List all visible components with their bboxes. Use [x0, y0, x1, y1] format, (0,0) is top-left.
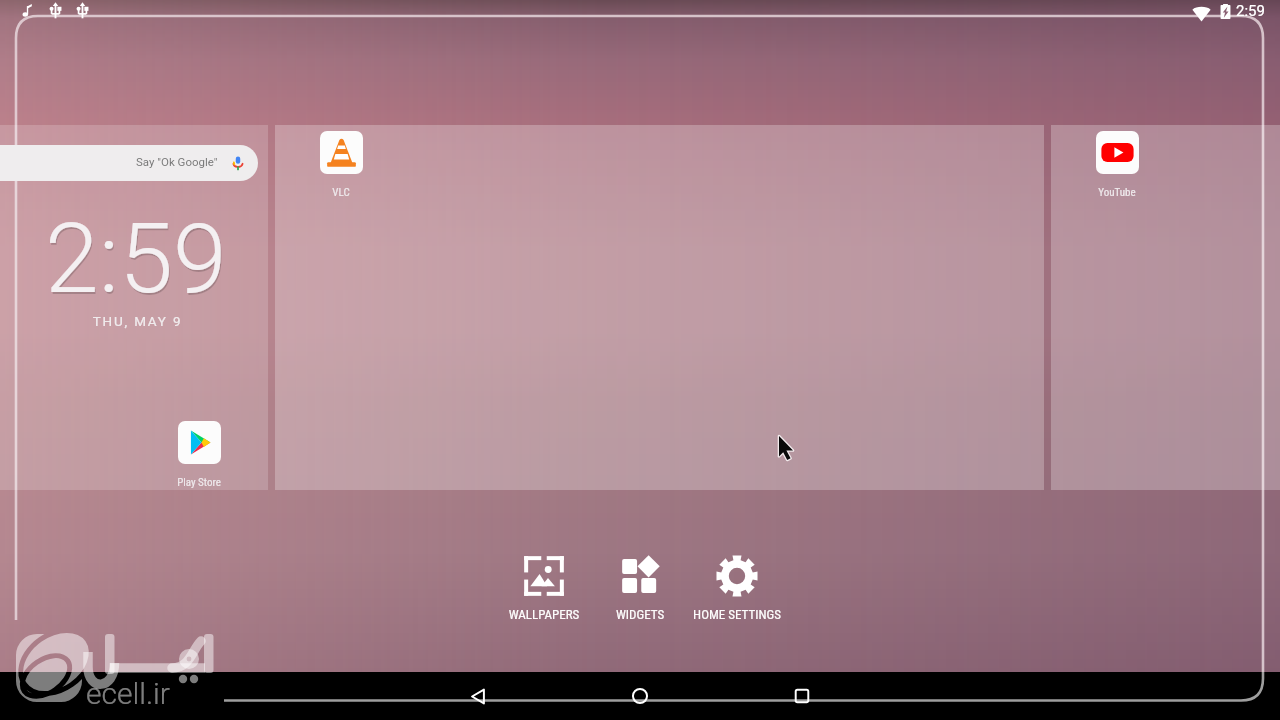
- staticText: 2:59: [45, 202, 227, 316]
- button[interactable]: Play Store: [159, 421, 239, 489]
- staticText: YouTube: [1077, 186, 1157, 199]
- button[interactable]: Clock widget, 2:59, Thu, May 9: [0, 125, 275, 355]
- staticText: HOME SETTINGS: [682, 607, 792, 622]
- button[interactable]: WALLPAPERS: [496, 555, 592, 622]
- button[interactable]: Back: [446, 672, 510, 720]
- staticText: ecell.ir: [86, 676, 170, 711]
- button[interactable]: YouTube: [1077, 131, 1157, 199]
- staticText: 2:59: [1236, 2, 1265, 20]
- button[interactable]: Recent apps: [770, 672, 834, 720]
- staticText: VLC: [301, 186, 381, 199]
- button[interactable]: Home: [608, 672, 672, 720]
- button[interactable]: HOME SETTINGS: [682, 555, 792, 622]
- button[interactable]: Google search: [0, 145, 258, 181]
- button[interactable]: Voice search: [223, 148, 253, 178]
- staticText: Say "Ok Google": [136, 155, 218, 168]
- staticText: THU, MAY 9: [0, 313, 275, 329]
- button[interactable]: VLC: [301, 131, 381, 199]
- staticText: WIDGETS: [592, 607, 688, 622]
- staticText: WALLPAPERS: [496, 607, 592, 622]
- staticText: Play Store: [159, 476, 239, 489]
- staticText: 2:59: [46, 204, 228, 318]
- button[interactable]: WIDGETS: [592, 555, 688, 622]
